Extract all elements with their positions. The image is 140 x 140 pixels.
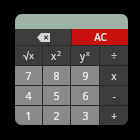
staticText: -: [112, 89, 116, 103]
staticText: 4: [25, 89, 32, 103]
button[interactable]: Square: [43, 46, 70, 65]
button[interactable]: 3: [71, 106, 99, 125]
staticText: 1: [25, 109, 32, 123]
staticText: 2: [53, 109, 60, 123]
staticText: 8: [53, 69, 60, 83]
button[interactable]: +: [100, 106, 128, 125]
staticText: ÷: [111, 49, 117, 63]
staticText: 5: [53, 89, 60, 103]
button[interactable]: 6: [71, 86, 99, 105]
button[interactable]: x: [100, 66, 128, 85]
button[interactable]: AC: [72, 29, 128, 45]
staticText: AC: [94, 30, 107, 44]
button[interactable]: -: [100, 86, 128, 105]
button[interactable]: 7: [15, 66, 42, 85]
staticText: 9: [82, 69, 89, 83]
button[interactable]: 8: [43, 66, 70, 85]
button[interactable]: 9: [71, 66, 99, 85]
staticText: x: [111, 69, 117, 83]
button[interactable]: 2: [43, 106, 70, 125]
button[interactable]: Power: [71, 46, 99, 65]
button[interactable]: ÷: [100, 46, 128, 65]
staticText: x: [29, 49, 35, 62]
staticText: x: [86, 49, 90, 59]
button[interactable]: Backspace: [15, 29, 71, 45]
staticText: 7: [25, 69, 32, 83]
staticText: x: [51, 49, 57, 63]
staticText: 2: [57, 49, 62, 59]
button[interactable]: Square root: [15, 46, 42, 65]
staticText: 6: [82, 89, 89, 103]
button[interactable]: 1: [15, 106, 42, 125]
button[interactable]: 5: [43, 86, 70, 105]
staticText: y: [80, 49, 86, 63]
button[interactable]: 4: [15, 86, 42, 105]
staticText: 3: [82, 109, 89, 123]
staticText: +: [111, 109, 117, 123]
